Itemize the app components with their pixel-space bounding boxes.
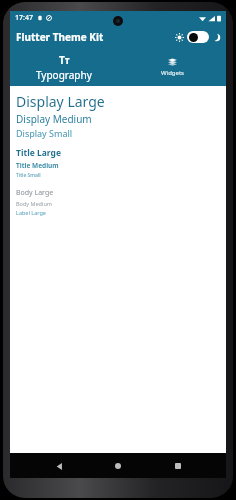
other: Dark mode: [212, 33, 221, 42]
staticText: Body Medium: [16, 200, 52, 207]
other: Light mode: [175, 33, 184, 42]
button[interactable]: Widgets: [118, 48, 226, 86]
staticText: Title Medium: [16, 161, 59, 170]
button[interactable]: BottomAppBar using AppBottomAppBarTheme: [10, 438, 226, 478]
staticText: Widgets: [161, 69, 184, 77]
staticText: Label Large: [16, 209, 46, 216]
staticText: Display Large: [16, 92, 105, 111]
staticText: Title Large: [16, 147, 61, 159]
staticText: Display Medium: [16, 112, 92, 126]
button[interactable]: Home: [107, 455, 129, 477]
staticText: Flutter Theme Kit: [16, 30, 104, 44]
staticText: Typography: [36, 68, 92, 82]
staticText: 17:47: [15, 13, 33, 23]
staticText: Body Large: [16, 188, 54, 198]
button[interactable]: Tᴛ: [10, 48, 118, 86]
button[interactable]: Toggle theme: [187, 31, 209, 43]
staticText: Tᴛ: [59, 53, 70, 67]
staticText: Title Small: [16, 172, 41, 179]
staticText: Display Small: [16, 127, 73, 139]
button[interactable]: Back: [48, 455, 70, 477]
button[interactable]: Recent apps: [167, 455, 189, 477]
